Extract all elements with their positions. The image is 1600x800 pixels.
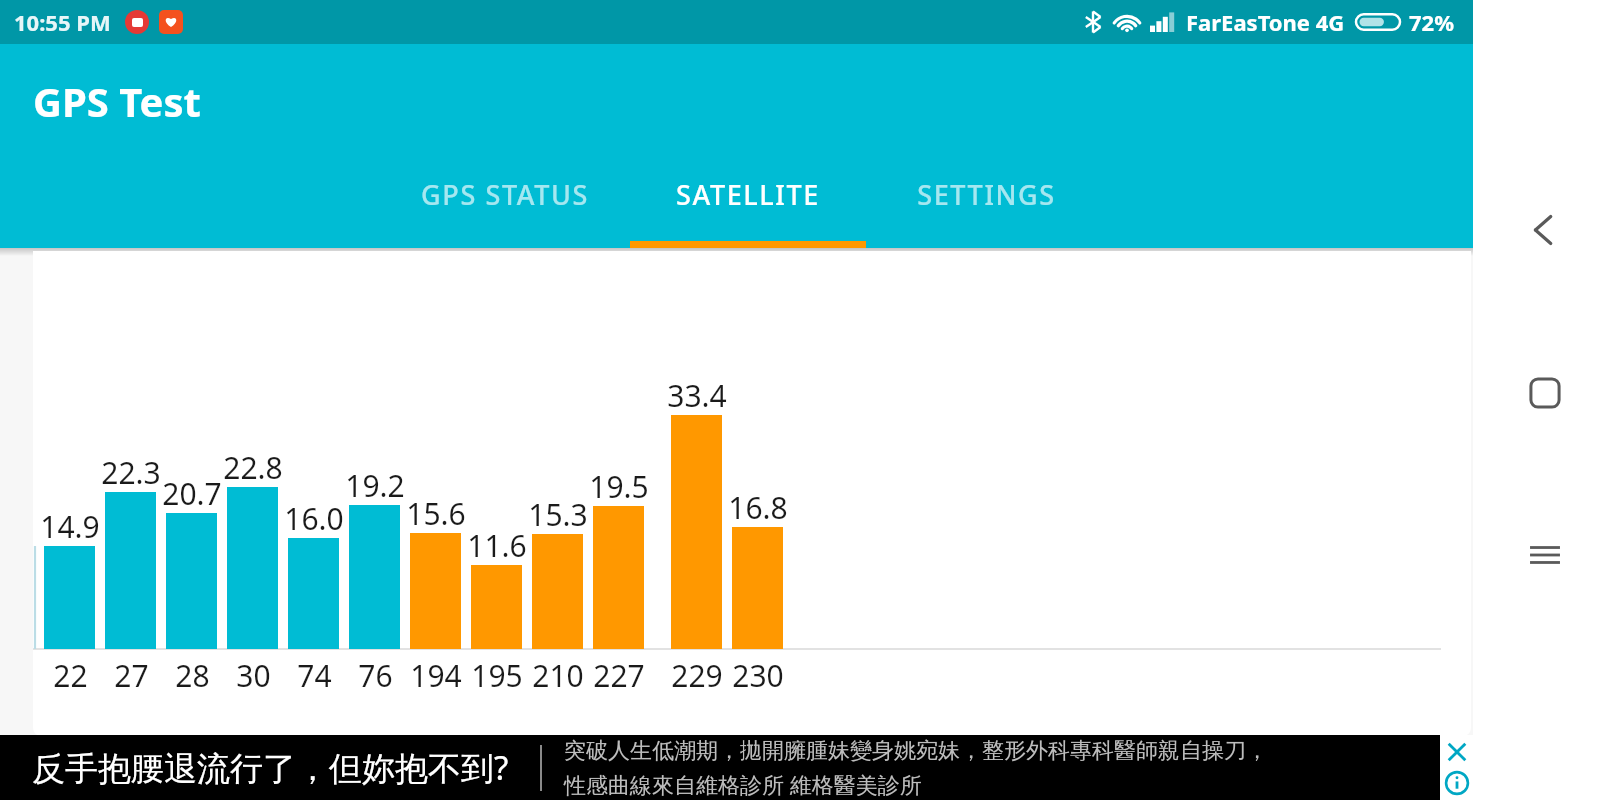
button[interactable]: Ad info <box>1444 770 1470 796</box>
staticText: 19.2 <box>345 465 405 506</box>
staticText: GPS STATUS <box>421 176 589 213</box>
staticText: SATELLITE <box>676 176 820 213</box>
staticText: 10:55 PM <box>14 7 111 37</box>
button[interactable]: Home <box>1523 371 1567 415</box>
staticText: 15.3 <box>528 494 588 535</box>
staticText: 230 <box>732 655 784 696</box>
staticText: 20.7 <box>162 473 222 514</box>
staticText: 11.6 <box>467 525 527 566</box>
staticText: 14.9 <box>40 506 100 547</box>
staticText: 194 <box>410 655 462 696</box>
staticText: 22.3 <box>101 452 161 493</box>
staticText: 反手抱腰退流行了，但妳抱不到? <box>32 745 509 790</box>
staticText: SETTINGS <box>917 176 1056 213</box>
button[interactable]: 突破人生低潮期，拋開臃腫妹變身姚宛妹，整形外科專科醫師親自操刀， <box>564 737 1440 799</box>
staticText: 76 <box>358 655 393 696</box>
staticText: 195 <box>471 655 523 696</box>
button[interactable]: Recent apps <box>1523 533 1567 577</box>
button[interactable]: Back <box>1521 206 1569 254</box>
staticText: 15.6 <box>406 493 466 534</box>
staticText: 22.8 <box>223 447 283 488</box>
staticText: 16.8 <box>728 487 788 528</box>
staticText: 22 <box>53 655 88 696</box>
staticText: 16.0 <box>284 498 344 539</box>
staticText: 性感曲線來自維格診所 維格醫美診所 <box>564 769 922 799</box>
staticText: 19.5 <box>589 466 649 507</box>
button[interactable]: SATELLITE <box>630 140 866 248</box>
staticText: 28 <box>175 655 210 696</box>
staticText: 210 <box>532 655 584 696</box>
staticText: 突破人生低潮期，拋開臃腫妹變身姚宛妹，整形外科專科醫師親自操刀， <box>564 737 1268 765</box>
staticText: 33.4 <box>667 375 727 416</box>
staticText: FarEasTone 4G <box>1186 7 1345 37</box>
button[interactable]: 反手抱腰退流行了，但妳抱不到? <box>0 735 540 800</box>
staticText: 72% <box>1409 7 1455 37</box>
button[interactable]: Close ad <box>1444 739 1470 765</box>
button[interactable]: SETTINGS <box>866 140 1106 248</box>
staticText: 227 <box>593 655 645 696</box>
staticText: GPS Test <box>33 74 201 128</box>
staticText: 74 <box>297 655 332 696</box>
staticText: 229 <box>671 655 723 696</box>
button[interactable]: GPS STATUS <box>380 140 630 248</box>
staticText: 30 <box>236 655 271 696</box>
staticText: 27 <box>114 655 149 696</box>
